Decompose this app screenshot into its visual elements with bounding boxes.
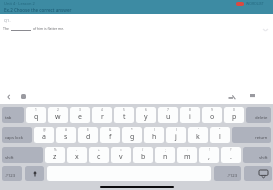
staticText: p (232, 112, 237, 122)
staticText: x (75, 152, 79, 162)
button[interactable]: + (89, 147, 109, 163)
staticText: z (53, 152, 57, 162)
staticText: shift (259, 155, 268, 161)
staticText: The (3, 26, 9, 31)
staticText: % (54, 148, 57, 152)
staticText: n (163, 152, 168, 162)
button[interactable]: ! (199, 147, 219, 163)
button[interactable]: = (111, 147, 131, 163)
staticText: t (123, 112, 126, 122)
button[interactable]: Dictate (25, 166, 44, 181)
staticText: shift (5, 155, 14, 161)
button[interactable]: # (56, 127, 76, 143)
staticText: Q1. (4, 18, 11, 23)
button[interactable]: shift (2, 147, 43, 163)
staticText: j (175, 132, 177, 142)
button[interactable]: ; (155, 147, 175, 163)
button[interactable]: return (232, 127, 271, 143)
staticText: l (219, 132, 221, 142)
button[interactable]: & (100, 127, 120, 143)
staticText: = (120, 148, 122, 152)
other: Dictate (25, 166, 44, 181)
button[interactable]: Previous (4, 92, 13, 101)
button[interactable]: Hide keyboard (244, 166, 272, 181)
staticText: 2 (57, 108, 59, 112)
staticText: ) (176, 128, 177, 132)
button[interactable]: % (45, 147, 65, 163)
staticText: , (208, 152, 210, 162)
staticText: e (78, 112, 82, 122)
staticText: ( (154, 128, 155, 132)
staticText: # (65, 128, 68, 132)
button[interactable]: Record (236, 2, 244, 6)
button[interactable]: caps lock (2, 127, 32, 143)
button[interactable]: " (210, 127, 230, 143)
staticText: of him is flatter me. (33, 26, 65, 31)
button[interactable]: Dismiss keyboard (247, 91, 258, 102)
staticText: w (55, 112, 61, 122)
button[interactable]: 2 (48, 107, 68, 123)
button[interactable]: ? (221, 147, 241, 163)
staticText: ; (165, 148, 166, 152)
staticText: 5 (123, 108, 125, 112)
button[interactable]: tab (2, 107, 24, 123)
staticText: g (130, 132, 135, 142)
button[interactable]: Answer blank (11, 25, 31, 31)
button[interactable]: .?123 (2, 166, 22, 181)
staticText: caps lock (5, 135, 23, 141)
button[interactable]: Markup (226, 91, 237, 102)
staticText: . (230, 152, 232, 162)
staticText: a (42, 132, 46, 142)
button[interactable]: : (177, 147, 197, 163)
button[interactable]: 3 (70, 107, 90, 123)
button[interactable]: delete (246, 107, 271, 123)
staticText: q (34, 112, 39, 122)
button[interactable]: Autofill (19, 92, 28, 101)
staticText: 6 (145, 108, 147, 112)
button[interactable]: @ (34, 127, 54, 143)
button[interactable]: $ (78, 127, 98, 143)
staticText: 7 (167, 108, 169, 112)
staticText: : (187, 148, 188, 152)
button[interactable]: ) (166, 127, 186, 143)
button[interactable]: 9 (202, 107, 222, 123)
button[interactable]: 6 (136, 107, 156, 123)
button[interactable]: / (133, 147, 153, 163)
staticText: d (86, 132, 91, 142)
other: More (262, 27, 269, 34)
staticText: r (101, 112, 104, 122)
button[interactable]: 7 (158, 107, 178, 123)
button[interactable]: 4 (92, 107, 112, 123)
staticText: y (144, 112, 148, 122)
button[interactable]: 0 (224, 107, 244, 123)
staticText: @ (43, 128, 46, 132)
staticText: & (109, 128, 112, 132)
button[interactable]: 8 (180, 107, 200, 123)
staticText: .?123 (227, 173, 238, 179)
button[interactable]: ' (188, 127, 208, 143)
button[interactable]: 1 (26, 107, 46, 123)
button[interactable]: * (122, 127, 142, 143)
button[interactable]: .?123 (214, 166, 241, 181)
button[interactable]: shift (243, 147, 271, 163)
other: Hide keyboard (244, 166, 272, 181)
staticText: 4 (101, 108, 103, 112)
staticText: f (109, 132, 112, 142)
staticText: 9 (211, 108, 213, 112)
button[interactable]: - (67, 147, 87, 163)
button[interactable]: ( (144, 127, 164, 143)
button[interactable]: 5 (114, 107, 134, 123)
staticText: 8 (189, 108, 191, 112)
staticText: v (119, 152, 123, 162)
staticText: ! (209, 148, 210, 152)
staticText: i (189, 112, 191, 122)
staticText: c (97, 152, 101, 162)
staticText: 3 (79, 108, 81, 112)
staticText: return (255, 135, 268, 141)
staticText: s (64, 132, 68, 142)
staticText: * (131, 128, 133, 132)
staticText: Ex.2 Choose the correct answer (4, 7, 72, 13)
staticText: m (184, 152, 191, 162)
staticText: + (98, 148, 100, 152)
